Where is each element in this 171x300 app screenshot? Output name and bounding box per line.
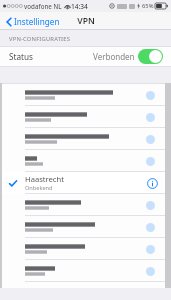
staticText: vodafone NL (24, 2, 62, 10)
button[interactable] (2, 150, 165, 172)
button[interactable]: VPN status toggle (138, 49, 163, 64)
staticText: VPN (77, 15, 95, 27)
staticText: Verbonden (93, 51, 135, 62)
staticText: 65% (142, 2, 154, 10)
button[interactable]: Status (0, 46, 171, 67)
staticText: 14:34 (71, 2, 88, 11)
button[interactable] (2, 84, 165, 106)
button[interactable]: Instellingen (4, 14, 62, 29)
button[interactable]: Haastrecht (2, 172, 165, 194)
staticText: Onbekend (25, 184, 53, 192)
button[interactable] (2, 128, 165, 150)
staticText: Status (9, 51, 33, 62)
staticText: Instellingen (14, 16, 60, 27)
button[interactable] (2, 106, 165, 128)
button[interactable] (2, 238, 165, 260)
button[interactable] (2, 260, 165, 282)
staticText: VPN-CONFIGURATIES (9, 35, 71, 43)
button[interactable] (2, 194, 165, 216)
button[interactable]: Meer info over Haastrecht (145, 176, 159, 190)
button[interactable] (2, 216, 165, 238)
staticText: Haastrecht (25, 174, 64, 184)
